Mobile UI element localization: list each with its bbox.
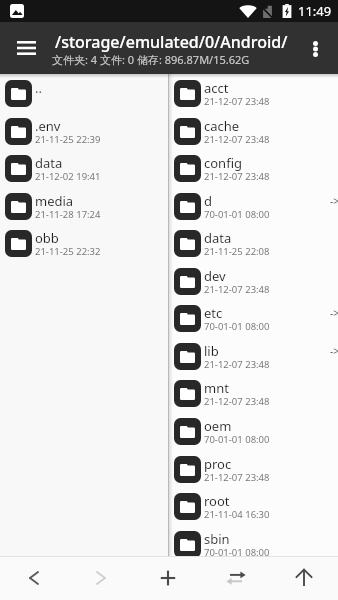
staticText: 21-12-07 23:48 (204, 395, 270, 408)
button[interactable]: lib (169, 337, 338, 375)
staticText: 70-01-01 08:00 (204, 320, 270, 333)
staticText: mnt (204, 379, 229, 397)
staticText: 70-01-01 08:00 (204, 433, 270, 446)
staticText: -> (330, 194, 338, 208)
staticText: 21-12-07 23:48 (204, 471, 270, 484)
staticText: 21-11-04 16:30 (204, 508, 270, 521)
button[interactable]: cache (169, 112, 338, 150)
button[interactable]: More options (294, 28, 336, 70)
button[interactable]: config (169, 149, 338, 187)
staticText: dev (204, 267, 226, 285)
staticText: 11:49 (298, 2, 332, 20)
button[interactable]: New (134, 556, 202, 600)
button[interactable]: .env (0, 112, 169, 150)
staticText: 70-01-01 08:00 (204, 208, 270, 221)
staticText: 21-12-07 23:48 (204, 133, 270, 146)
button[interactable]: Menu (4, 26, 48, 70)
staticText: .env (35, 117, 61, 135)
staticText: 21-11-25 22:32 (35, 245, 101, 258)
button[interactable]: mnt (169, 374, 338, 412)
button[interactable]: etc (169, 299, 338, 337)
button[interactable]: sbin (169, 525, 338, 563)
staticText: lib (204, 342, 219, 360)
staticText: 21-12-07 23:48 (204, 283, 270, 296)
staticText: oem (204, 417, 232, 435)
button[interactable]: media (0, 187, 169, 225)
button[interactable]: Forward (67, 556, 134, 600)
button[interactable]: acct (169, 74, 338, 112)
staticText: media (35, 192, 74, 210)
staticText: data (204, 229, 232, 247)
staticText: root (204, 492, 230, 510)
staticText: obb (35, 229, 59, 247)
staticText: /storage/emulated/0/Android/ (55, 31, 288, 53)
staticText: config (204, 154, 242, 172)
staticText: d (204, 192, 212, 210)
button[interactable]: Up (270, 556, 338, 600)
button[interactable]: data (169, 224, 338, 262)
button[interactable]: data (0, 149, 169, 187)
staticText: 70-01-01 08:00 (204, 546, 270, 559)
staticText: 21-12-07 23:48 (204, 95, 270, 108)
staticText: sbin (204, 530, 230, 548)
staticText: 文件夹: 4 文件: 0 储存: 896.87M/15.62G (52, 52, 250, 67)
staticText: cache (204, 117, 240, 135)
staticText: etc (204, 304, 223, 322)
button[interactable]: d (169, 187, 338, 225)
button[interactable]: proc (169, 450, 338, 488)
button[interactable]: dev (169, 262, 338, 300)
staticText: -> (330, 306, 338, 320)
staticText: 21-11-25 22:39 (35, 133, 101, 146)
staticText: -> (330, 344, 338, 358)
staticText: 21-11-28 17:24 (35, 208, 101, 221)
button[interactable]: .. (0, 74, 169, 112)
staticText: 21-12-02 19:41 (35, 170, 101, 183)
button[interactable]: root (169, 487, 338, 525)
staticText: .. (35, 79, 42, 97)
staticText: 21-12-07 23:48 (204, 358, 270, 371)
staticText: data (35, 154, 63, 172)
staticText: 21-11-25 22:08 (204, 245, 270, 258)
button[interactable]: obb (0, 224, 169, 262)
staticText: proc (204, 455, 232, 473)
staticText: 21-12-07 23:48 (204, 170, 270, 183)
staticText: acct (204, 79, 229, 97)
button[interactable]: oem (169, 412, 338, 450)
button[interactable]: Swap panes (202, 556, 270, 600)
button[interactable]: Back (0, 556, 67, 600)
